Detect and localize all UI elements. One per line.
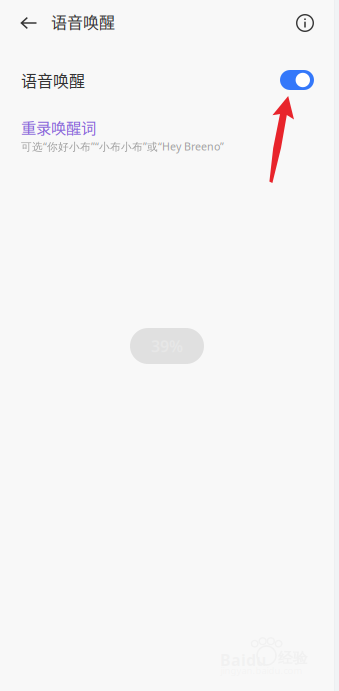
button[interactable]: 返回: [12, 0, 46, 46]
button[interactable]: 语音唤醒开关: [0, 64, 339, 96]
staticText: 重录唤醒词: [21, 116, 96, 138]
staticText: 可选“你好小布”“小布小布”或“Hey Breeno”: [21, 139, 224, 154]
staticText: 语音唤醒: [21, 68, 85, 92]
staticText: 语音唤醒: [51, 10, 115, 33]
button[interactable]: 说明: [286, 0, 324, 46]
button[interactable]: 重录唤醒词: [0, 113, 339, 162]
